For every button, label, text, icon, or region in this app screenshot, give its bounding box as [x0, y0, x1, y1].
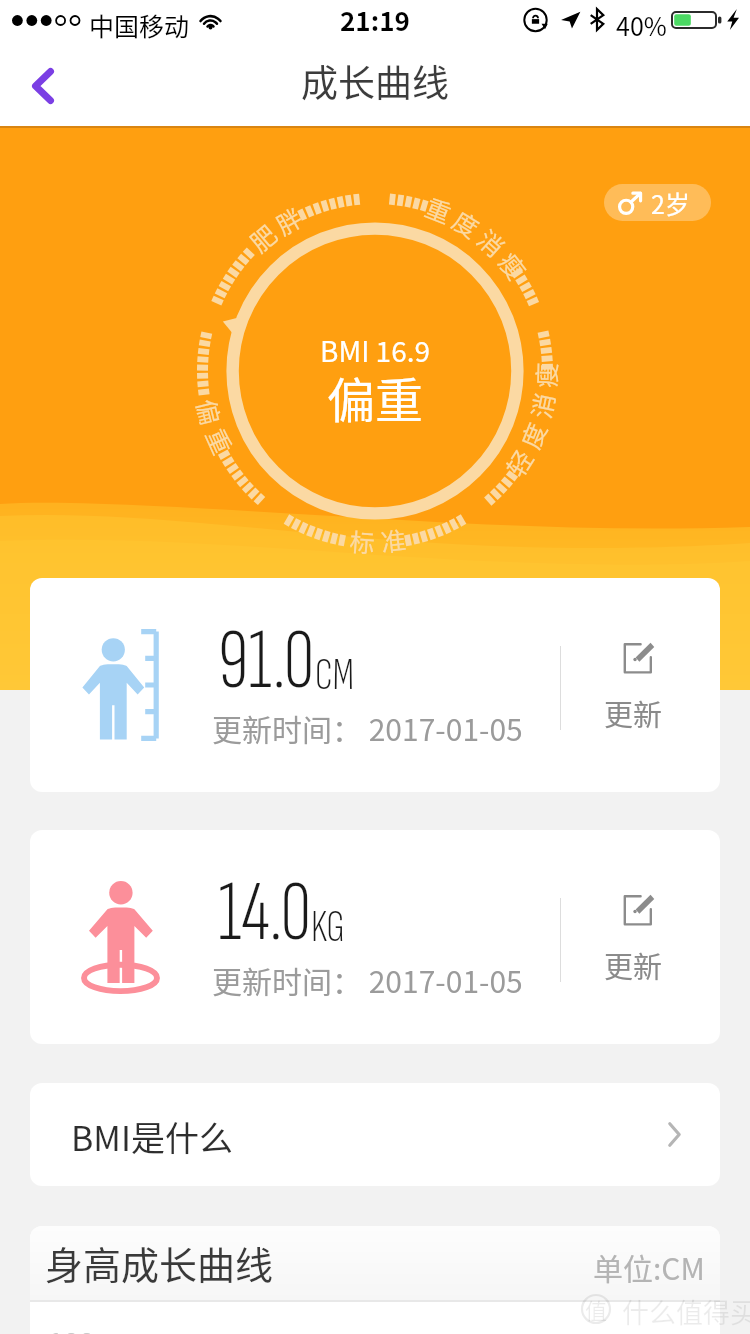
button[interactable]: 91.0: [30, 578, 720, 792]
staticText: CM: [315, 648, 355, 702]
staticText: 2岁: [651, 185, 690, 221]
button[interactable]: 更新: [586, 634, 706, 742]
button[interactable]: 14.0: [30, 830, 720, 1044]
staticText: 什么值得买: [622, 1292, 750, 1331]
staticText: 40%: [616, 7, 667, 43]
button[interactable]: BMI是什么: [30, 1083, 720, 1186]
staticText: 更新: [604, 944, 663, 986]
staticText: 100: [48, 1322, 95, 1334]
staticText: KG: [311, 900, 345, 954]
staticText: 值: [585, 1293, 608, 1323]
button[interactable]: Male: [604, 184, 711, 221]
staticText: 单位:CM: [593, 1245, 705, 1288]
staticText: 91.0: [218, 610, 315, 713]
button[interactable]: 更新: [586, 886, 706, 994]
staticText: 更新: [604, 692, 663, 734]
staticText: 身高成长曲线: [45, 1235, 274, 1290]
button[interactable]: Back: [0, 44, 86, 128]
staticText: 更新时间： 2017-01-05: [212, 706, 523, 749]
staticText: 中国移动: [89, 7, 190, 43]
staticText: 成长曲线: [301, 54, 449, 108]
staticText: 偏重: [327, 362, 424, 432]
staticText: 14.0: [218, 862, 311, 965]
staticText: BMI是什么: [71, 1112, 233, 1161]
staticText: BMI 16.9: [320, 330, 431, 371]
staticText: 21:19: [340, 1, 410, 39]
staticText: 更新时间： 2017-01-05: [212, 958, 523, 1001]
other: Male: [618, 191, 642, 215]
